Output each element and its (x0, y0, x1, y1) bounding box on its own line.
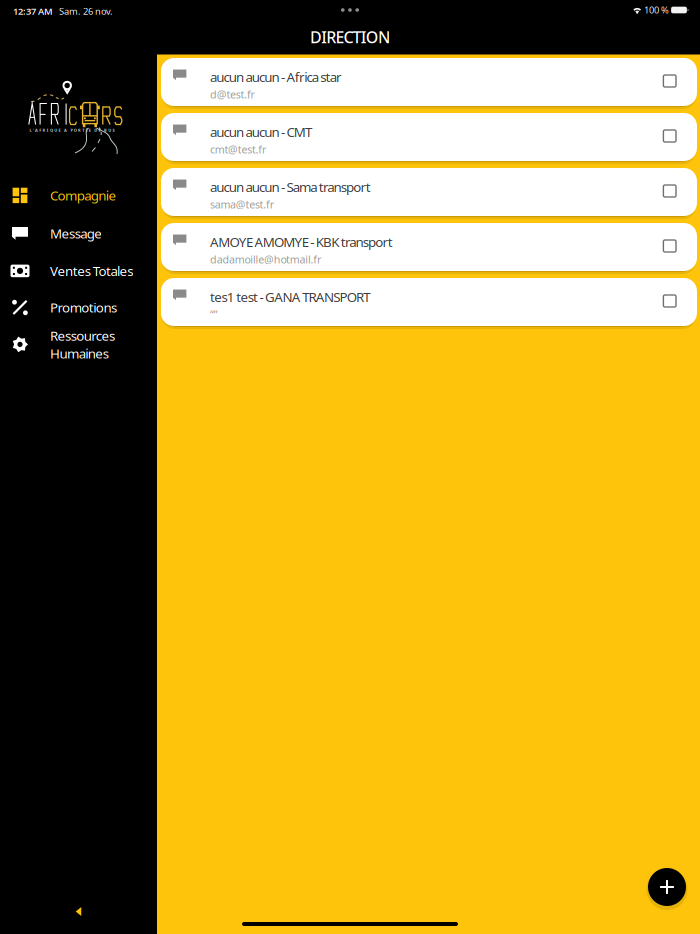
button[interactable]: Collapse sidebar (64, 895, 93, 928)
staticText: cmt@test.fr (210, 142, 266, 156)
staticText: 12:37 AM (13, 5, 53, 17)
staticText: Message (50, 224, 102, 242)
staticText: AMOYE AMOMYE - KBK transport (210, 233, 393, 251)
button[interactable]: AMOYE AMOMYE - KBK transport (161, 223, 697, 274)
staticText: L'AFRIQUE A PORTÉE DE BUS (29, 127, 114, 133)
staticText: aucun aucun - Africa star (210, 68, 342, 86)
button[interactable]: Add (645, 865, 689, 909)
staticText: Ressources Humaines (50, 327, 115, 362)
staticText: “” (210, 307, 218, 321)
staticText: d@test.fr (210, 87, 255, 101)
button[interactable]: tes1 test - GANA TRANSPORT (161, 278, 697, 329)
staticText: aucun aucun - CMT (210, 123, 312, 141)
staticText: Sam. 26 nov. (53, 5, 113, 17)
button[interactable]: Ressources Humaines (0, 325, 157, 363)
button[interactable]: Message (0, 214, 157, 252)
staticText: 100 % (642, 4, 671, 16)
button[interactable]: Compagnie (0, 176, 157, 214)
staticText: DIRECTION (310, 26, 390, 48)
staticText: sama@test.fr (210, 197, 274, 211)
staticText: Ventes Totales (50, 262, 133, 280)
button[interactable]: Ventes Totales (0, 252, 157, 289)
staticText: aucun aucun - Sama transport (210, 178, 371, 196)
button[interactable]: aucun aucun - CMT (161, 113, 697, 164)
staticText: dadamoille@hotmail.fr (210, 252, 321, 266)
button[interactable]: aucun aucun - Sama transport (161, 168, 697, 219)
button[interactable]: aucun aucun - Africa star (161, 58, 697, 109)
staticText: Promotions (50, 298, 117, 316)
button[interactable]: Promotions (0, 289, 157, 325)
staticText: tes1 test - GANA TRANSPORT (210, 288, 370, 306)
staticText: Compagnie (50, 186, 116, 204)
